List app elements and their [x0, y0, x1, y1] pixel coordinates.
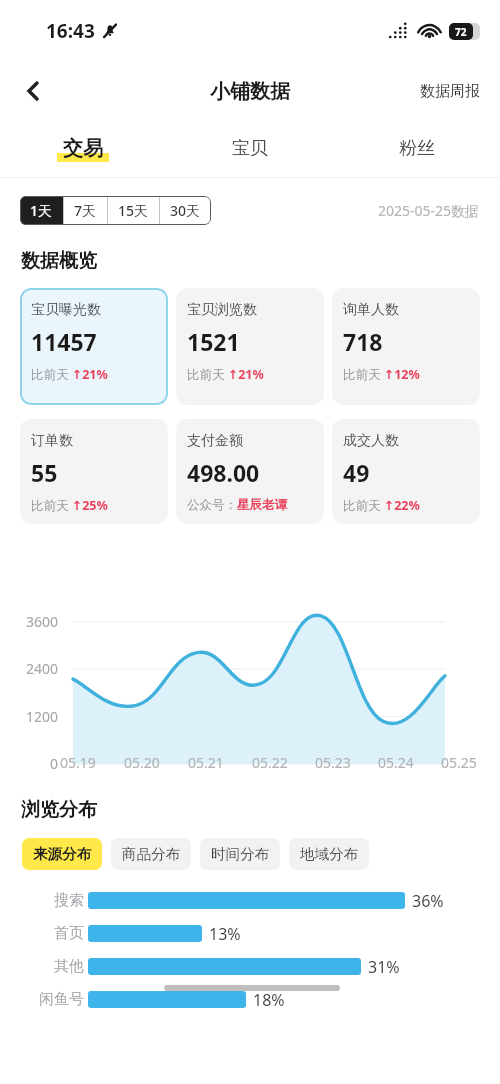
- button[interactable]: 30天: [160, 196, 211, 225]
- staticText: 05.24: [378, 753, 414, 772]
- staticText: 数据概览: [21, 249, 97, 273]
- button[interactable]: 搜索: [0, 884, 500, 917]
- staticText: 闲鱼号: [39, 990, 84, 1009]
- button[interactable]: 宝贝: [166, 120, 333, 177]
- button[interactable]: Back: [10, 68, 56, 114]
- button[interactable]: 7天: [64, 196, 107, 225]
- staticText: 2400: [0, 659, 58, 678]
- staticText: 比前天 ↑21%: [187, 366, 264, 383]
- button[interactable]: 宝贝曝光数: [20, 288, 168, 405]
- staticText: 比前天 ↑12%: [343, 366, 420, 383]
- staticText: 地域分布: [300, 845, 358, 863]
- button[interactable]: 地域分布: [289, 838, 369, 870]
- staticText: 16:43: [46, 18, 95, 44]
- staticText: 49: [343, 457, 370, 488]
- button[interactable]: 支付金额: [176, 419, 324, 524]
- staticText: 成交人数: [343, 432, 399, 450]
- staticText: 15天: [118, 201, 149, 220]
- staticText: 时间分布: [211, 845, 269, 863]
- staticText: 首页: [54, 924, 84, 943]
- staticText: 2025-05-25数据: [378, 201, 480, 220]
- staticText: 7天: [74, 201, 97, 220]
- staticText: 3600: [0, 612, 58, 631]
- staticText: 30天: [170, 201, 201, 220]
- staticText: 公众号：星辰老谭: [187, 497, 287, 513]
- staticText: 1天: [30, 201, 53, 220]
- button[interactable]: 订单数: [20, 419, 168, 524]
- button[interactable]: 交易: [0, 120, 166, 177]
- button[interactable]: 首页: [0, 917, 500, 950]
- staticText: 比前天 ↑25%: [31, 497, 108, 514]
- staticText: 询单人数: [343, 301, 399, 319]
- staticText: 05.23: [315, 753, 351, 772]
- staticText: 18%: [253, 989, 285, 1011]
- button[interactable]: 15天: [108, 196, 159, 225]
- staticText: 498.00: [187, 457, 260, 488]
- staticText: 55: [31, 457, 58, 488]
- staticText: 其他: [54, 957, 84, 976]
- staticText: 比前天 ↑21%: [31, 366, 108, 383]
- staticText: 宝贝: [232, 137, 268, 160]
- staticText: 来源分布: [33, 845, 91, 863]
- button[interactable]: 其他: [0, 950, 500, 983]
- staticText: 11457: [31, 326, 97, 357]
- staticText: 交易: [63, 136, 103, 161]
- button[interactable]: 数据周报: [412, 74, 488, 109]
- staticText: 商品分布: [122, 845, 180, 863]
- staticText: 31%: [368, 956, 400, 978]
- staticText: 718: [343, 326, 383, 357]
- staticText: 05.21: [188, 753, 224, 772]
- staticText: 粉丝: [399, 137, 435, 160]
- staticText: 宝贝曝光数: [31, 301, 101, 319]
- button[interactable]: 宝贝浏览数: [176, 288, 324, 405]
- staticText: 0: [0, 754, 58, 773]
- button[interactable]: 成交人数: [332, 419, 480, 524]
- staticText: 05.19: [60, 753, 96, 772]
- staticText: 05.20: [124, 753, 160, 772]
- button[interactable]: 闲鱼号: [0, 983, 500, 1016]
- staticText: 订单数: [31, 432, 73, 450]
- button[interactable]: 1天: [20, 196, 63, 225]
- staticText: 比前天 ↑22%: [343, 497, 420, 514]
- button[interactable]: 时间分布: [200, 838, 280, 870]
- staticText: 36%: [412, 890, 444, 912]
- staticText: 72: [455, 25, 467, 39]
- staticText: 数据周报: [420, 82, 480, 101]
- staticText: 05.22: [252, 753, 288, 772]
- button[interactable]: 询单人数: [332, 288, 480, 405]
- staticText: 小铺数据: [210, 79, 290, 104]
- button[interactable]: 来源分布: [22, 838, 102, 870]
- staticText: 宝贝浏览数: [187, 301, 257, 319]
- button[interactable]: 粉丝: [333, 120, 500, 177]
- staticText: 搜索: [54, 891, 84, 910]
- staticText: 13%: [209, 923, 241, 945]
- button[interactable]: 商品分布: [111, 838, 191, 870]
- staticText: 浏览分布: [21, 798, 97, 822]
- staticText: 1200: [0, 707, 58, 726]
- staticText: 1521: [187, 326, 240, 357]
- staticText: 05.25: [441, 753, 477, 772]
- staticText: 支付金额: [187, 432, 243, 450]
